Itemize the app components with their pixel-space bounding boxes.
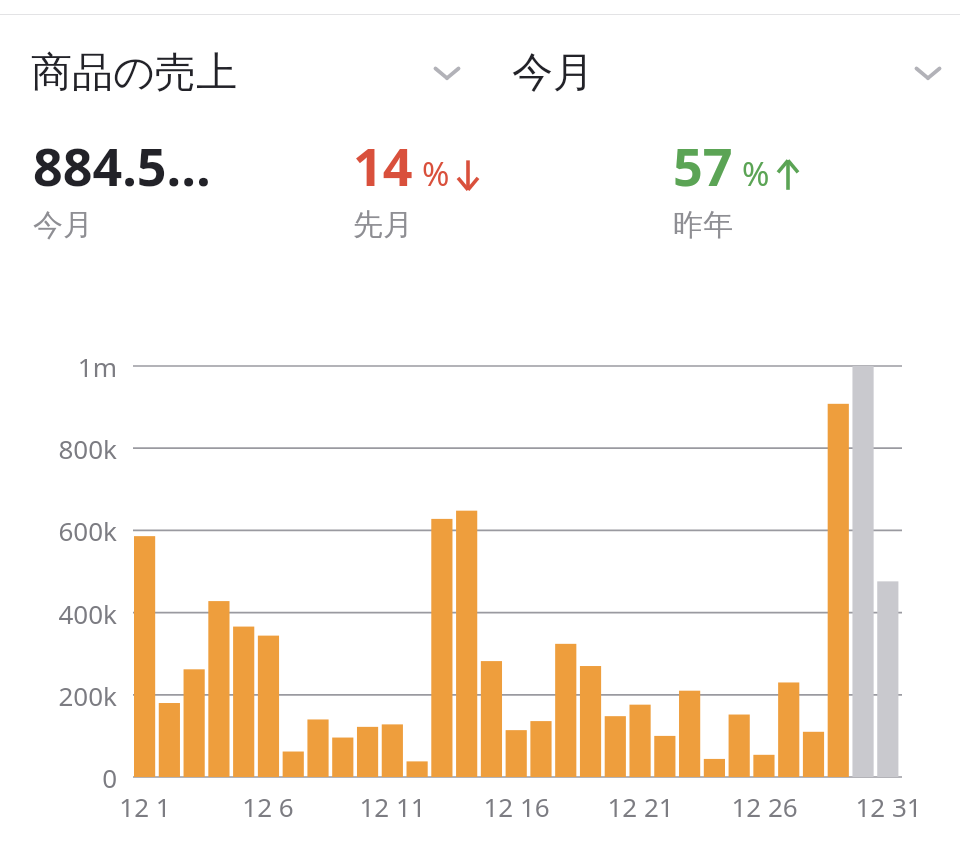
staticText: 今月	[33, 206, 93, 244]
button[interactable]: 57	[640, 130, 960, 255]
staticText: 800k	[58, 431, 117, 465]
staticText: 400k	[58, 596, 117, 630]
staticText: 12 1	[119, 789, 171, 824]
staticText: 600k	[58, 513, 117, 547]
staticText: 昨年	[673, 206, 733, 244]
button[interactable]: 14	[320, 130, 640, 255]
staticText: 12 31	[855, 789, 922, 824]
staticText: 200k	[58, 678, 117, 712]
staticText: 1m	[77, 349, 117, 383]
staticText: 12 26	[731, 789, 798, 824]
other: Change period	[905, 50, 951, 96]
staticText: 12 11	[359, 789, 426, 824]
staticText: 商品の売上	[31, 47, 237, 99]
staticText: %	[742, 151, 770, 196]
staticText: 12 6	[242, 789, 294, 824]
staticText: 0	[102, 760, 117, 794]
staticText: 今月	[512, 47, 594, 99]
button[interactable]: 今月	[492, 33, 960, 113]
staticText: 57	[673, 130, 733, 201]
staticText: 先月	[353, 206, 413, 244]
other: Change metric	[424, 50, 470, 96]
button[interactable]: 商品の売上	[0, 33, 492, 113]
button[interactable]: 884.5…	[0, 130, 320, 255]
staticText: 14	[353, 130, 413, 201]
staticText: 12 16	[483, 789, 550, 824]
staticText: %	[422, 151, 450, 196]
staticText: 884.5…	[33, 130, 212, 201]
staticText: 12 21	[607, 789, 674, 824]
